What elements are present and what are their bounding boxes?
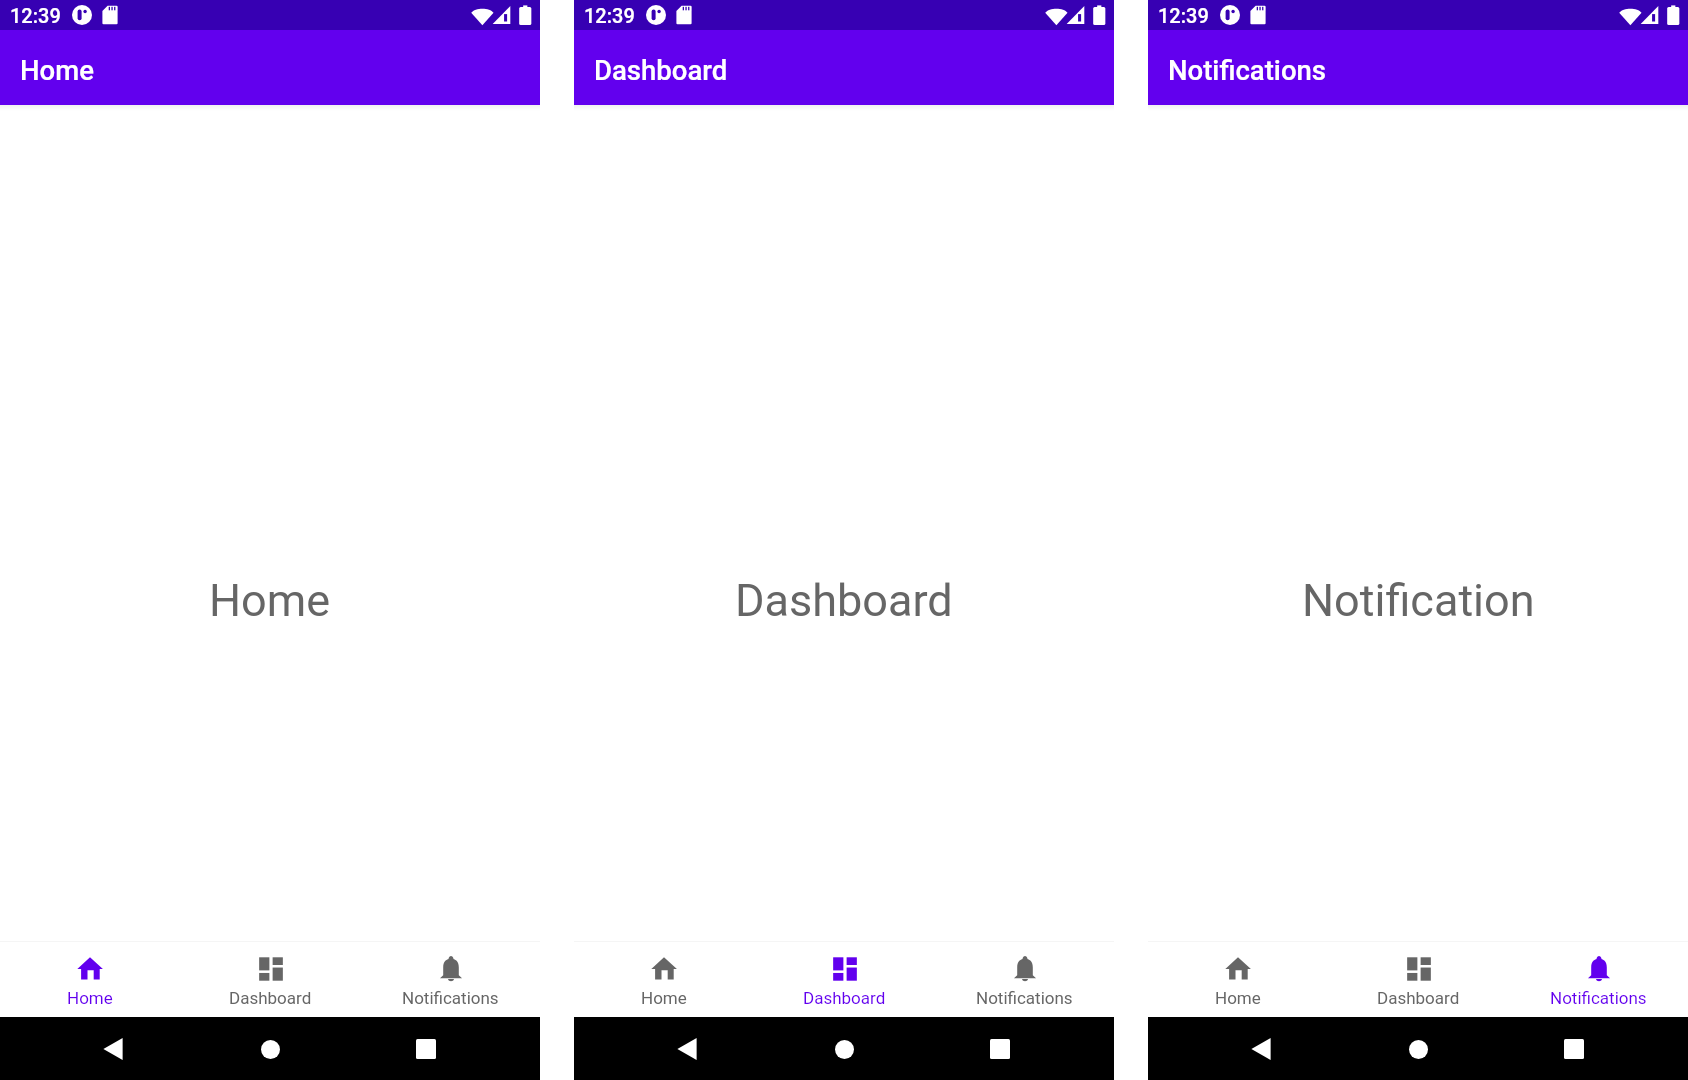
button[interactable]: Home <box>821 1026 867 1072</box>
button[interactable]: Back <box>90 1026 136 1072</box>
staticText: Home <box>641 988 687 1008</box>
button[interactable]: Recent apps <box>1551 1026 1597 1072</box>
button[interactable]: Home <box>1148 942 1328 1017</box>
button[interactable]: Notifications <box>934 942 1114 1017</box>
button[interactable]: Recent apps <box>403 1026 449 1072</box>
staticText: Dashboard <box>229 988 312 1008</box>
staticText: Home <box>20 54 94 86</box>
staticText: Home <box>209 574 331 627</box>
button[interactable]: Notifications <box>1508 942 1688 1017</box>
button[interactable]: Back <box>1238 1026 1284 1072</box>
button[interactable]: Home <box>1395 1026 1441 1072</box>
staticText: Home <box>1215 988 1261 1008</box>
button[interactable]: Home <box>574 942 754 1017</box>
staticText: Dashboard <box>594 54 728 86</box>
button[interactable]: Notifications <box>360 942 540 1017</box>
staticText: Notifications <box>1550 988 1647 1008</box>
staticText: 12:39 <box>584 4 635 27</box>
button[interactable]: Dashboard <box>1328 942 1508 1017</box>
button[interactable]: Back <box>664 1026 710 1072</box>
staticText: Notifications <box>976 988 1073 1008</box>
staticText: 12:39 <box>1158 4 1209 27</box>
button[interactable]: Home <box>0 942 180 1017</box>
button[interactable]: Home <box>247 1026 293 1072</box>
staticText: Home <box>67 988 113 1008</box>
staticText: Notifications <box>1168 54 1327 86</box>
staticText: 12:39 <box>10 4 61 27</box>
staticText: Dashboard <box>735 574 953 627</box>
staticText: Dashboard <box>1377 988 1460 1008</box>
button[interactable]: Dashboard <box>180 942 360 1017</box>
staticText: Notifications <box>402 988 499 1008</box>
staticText: Dashboard <box>803 988 886 1008</box>
button[interactable]: Dashboard <box>754 942 934 1017</box>
button[interactable]: Recent apps <box>977 1026 1023 1072</box>
staticText: Notification <box>1302 574 1535 627</box>
